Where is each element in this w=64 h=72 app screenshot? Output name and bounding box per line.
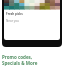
staticText: Fresh picks: [6, 12, 23, 16]
staticText: Promo codes,: [2, 54, 33, 60]
staticText: Near you: [6, 19, 19, 23]
button[interactable]: Fresh picks: [2, 0, 62, 47]
staticText: Specials & More: [2, 60, 38, 66]
